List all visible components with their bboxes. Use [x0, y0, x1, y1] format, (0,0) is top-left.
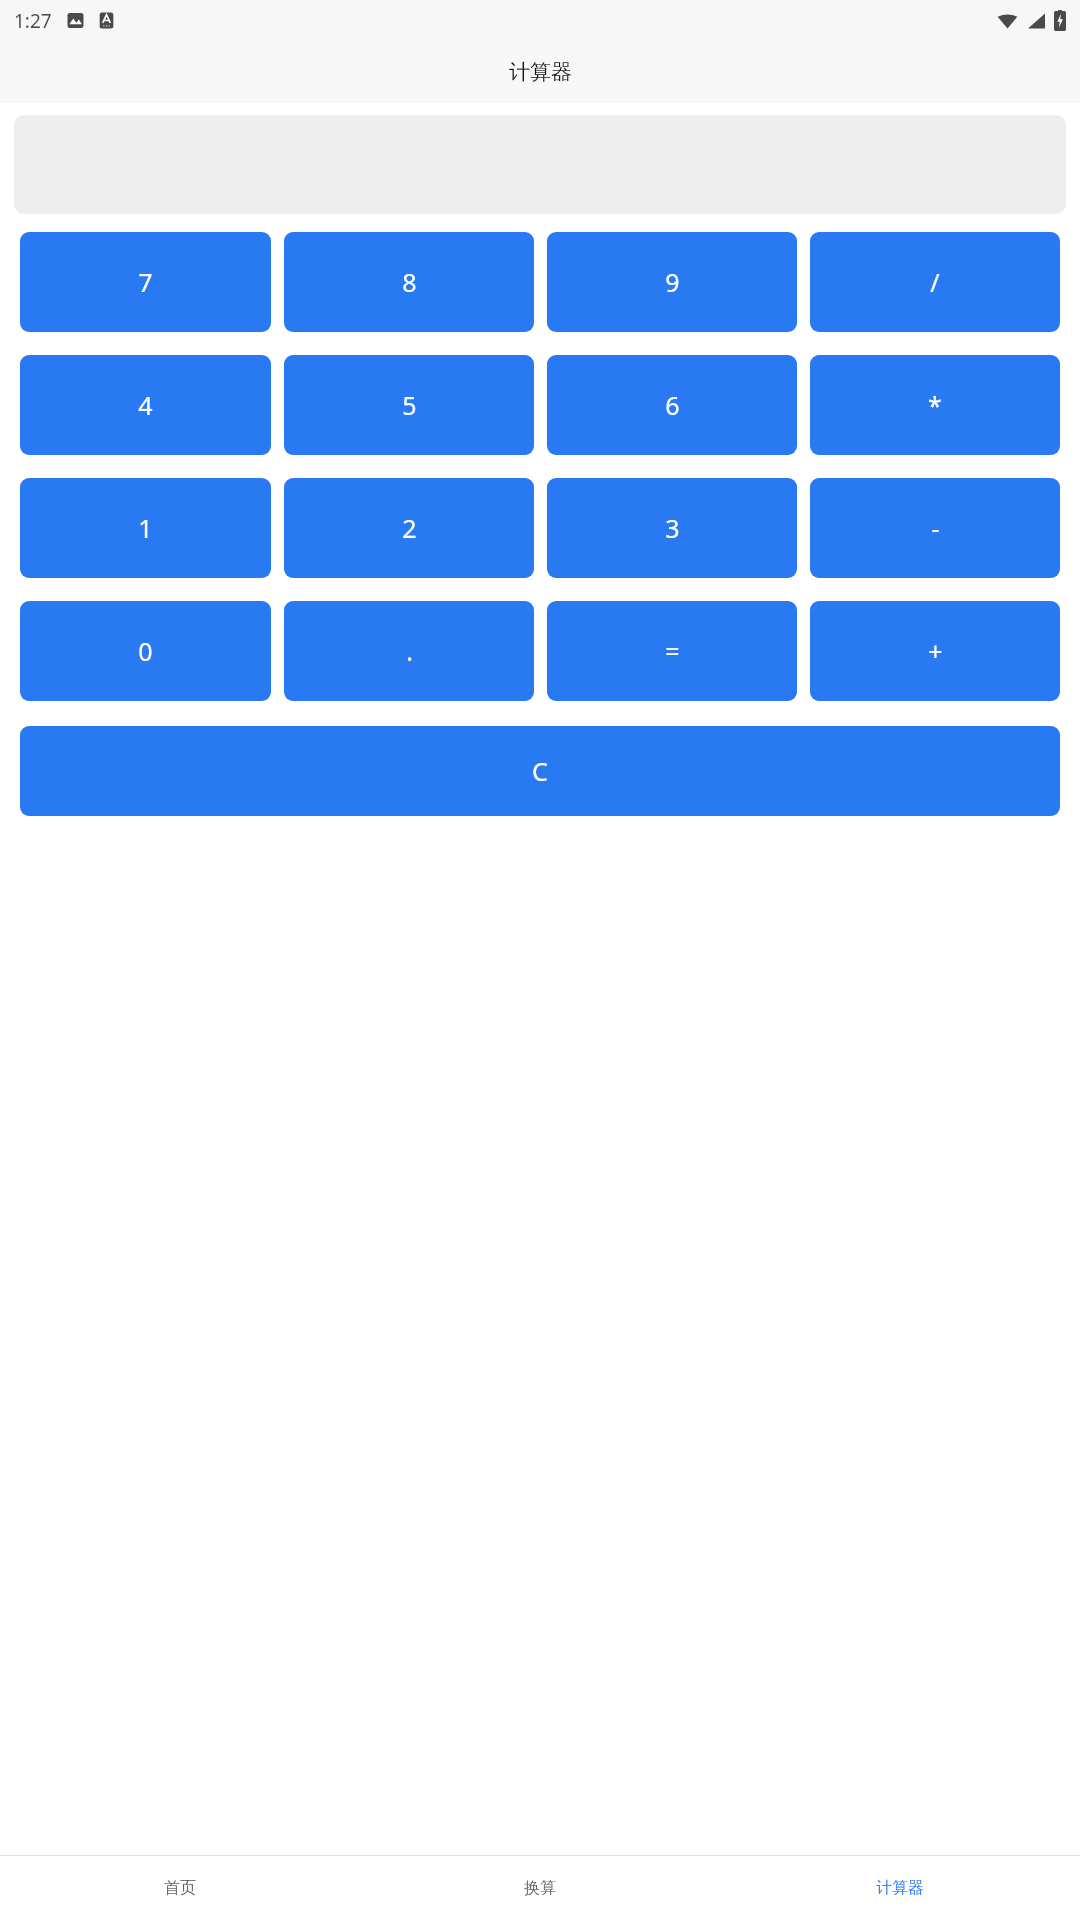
button[interactable]: 1 [20, 478, 271, 578]
staticText: 2 [402, 511, 417, 545]
button[interactable]: 0 [20, 601, 271, 701]
staticText: 9 [665, 265, 680, 299]
staticText: 7 [138, 265, 153, 299]
button[interactable]: 换算 [360, 1856, 720, 1920]
button[interactable]: 3 [547, 478, 797, 578]
staticText: + [928, 634, 943, 668]
staticText: 计算器 [509, 59, 572, 85]
staticText: 1:27 [14, 8, 52, 34]
button[interactable]: 首页 [0, 1856, 360, 1920]
staticText: 计算器 [876, 1878, 924, 1898]
button[interactable]: . [284, 601, 534, 701]
staticText: * [928, 388, 942, 422]
button[interactable]: = [547, 601, 797, 701]
staticText: 4 [138, 388, 153, 422]
button[interactable]: 4 [20, 355, 271, 455]
staticText: 6 [665, 388, 680, 422]
button[interactable]: 6 [547, 355, 797, 455]
button[interactable]: C [20, 726, 1060, 816]
staticText: 首页 [164, 1878, 196, 1898]
staticText: 0 [138, 634, 153, 668]
button[interactable]: 8 [284, 232, 534, 332]
button[interactable]: / [810, 232, 1060, 332]
staticText: C [532, 754, 548, 788]
button[interactable]: 计算器 [720, 1856, 1080, 1920]
button[interactable]: 9 [547, 232, 797, 332]
staticText: 3 [665, 511, 680, 545]
staticText: - [931, 511, 940, 545]
staticText: . [406, 634, 413, 668]
button[interactable]: + [810, 601, 1060, 701]
button[interactable]: 5 [284, 355, 534, 455]
button[interactable]: 2 [284, 478, 534, 578]
staticText: / [930, 265, 940, 299]
staticText: = [665, 634, 680, 668]
staticText: 5 [402, 388, 417, 422]
staticText: 8 [402, 265, 417, 299]
button[interactable]: * [810, 355, 1060, 455]
staticText: 1 [138, 511, 153, 545]
button[interactable]: 7 [20, 232, 271, 332]
button[interactable]: - [810, 478, 1060, 578]
staticText: 换算 [524, 1878, 556, 1898]
